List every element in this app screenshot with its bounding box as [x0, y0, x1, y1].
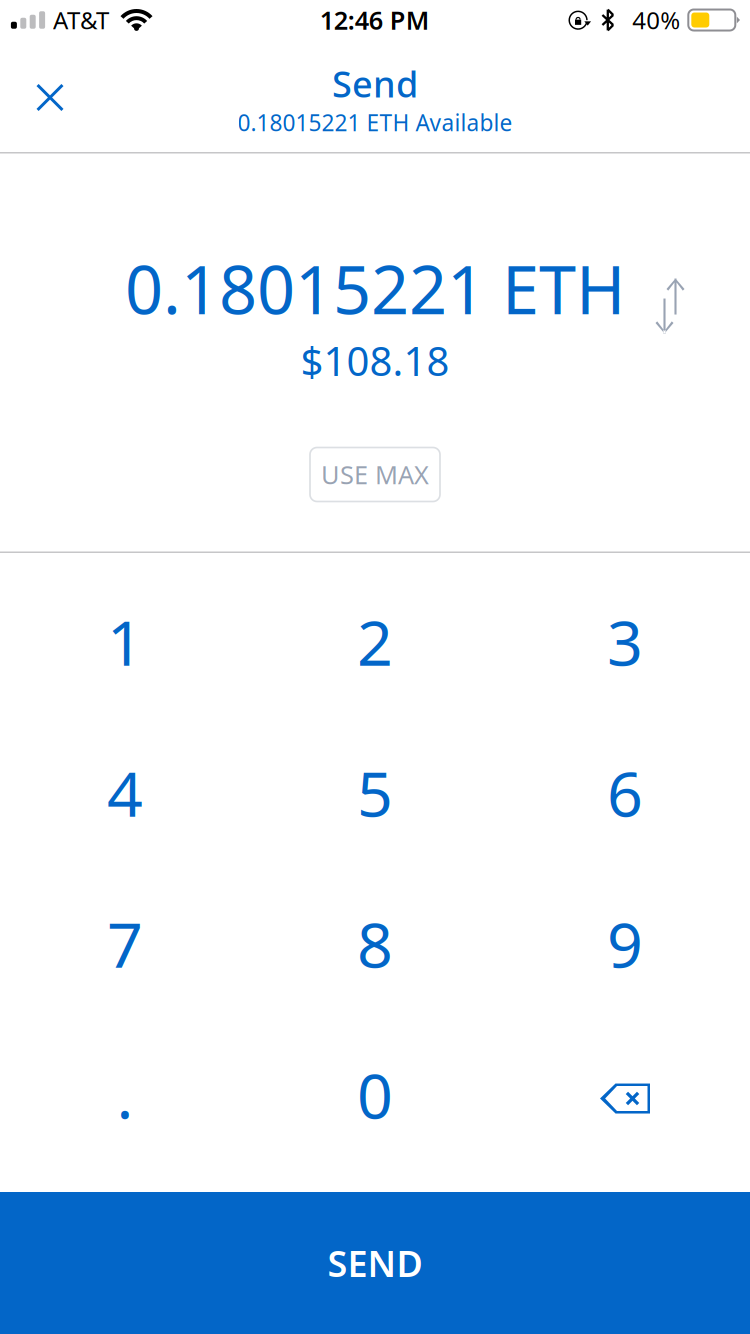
staticText: 2	[357, 600, 393, 683]
staticText: 1	[107, 600, 143, 683]
button[interactable]: 0	[250, 1019, 500, 1170]
staticText: $108.18	[300, 334, 449, 387]
button[interactable]: Switch currency	[657, 277, 685, 334]
staticText: AT&T	[53, 4, 109, 36]
staticText: 8	[357, 902, 393, 985]
staticText: .	[116, 1053, 133, 1136]
staticText: USE MAX	[321, 458, 429, 491]
button[interactable]: 6	[500, 717, 750, 868]
button[interactable]: 2	[250, 566, 500, 717]
staticText: 0	[357, 1053, 393, 1136]
staticText: 40%	[632, 4, 680, 36]
button[interactable]: 4	[0, 717, 250, 868]
button[interactable]: 9	[500, 868, 750, 1019]
button[interactable]: .	[0, 1019, 250, 1170]
button[interactable]: Delete	[500, 1019, 750, 1170]
button[interactable]: Close	[12, 59, 88, 135]
staticText: 7	[107, 902, 143, 985]
button[interactable]: 5	[250, 717, 500, 868]
staticText: 4	[107, 751, 143, 834]
button[interactable]: 8	[250, 868, 500, 1019]
staticText: 12:46 PM	[320, 3, 430, 37]
button[interactable]: 7	[0, 868, 250, 1019]
staticText: SEND	[327, 1239, 422, 1287]
staticText: 3	[607, 600, 643, 683]
staticText: 5	[357, 751, 393, 834]
button[interactable]: 1	[0, 566, 250, 717]
button[interactable]: SEND	[0, 1192, 750, 1334]
staticText: 0.18015221 ETH	[125, 244, 625, 333]
staticText: 0.18015221 ETH Available	[237, 107, 512, 137]
staticText: 9	[607, 902, 643, 985]
staticText: 6	[607, 751, 643, 834]
button[interactable]: USE MAX	[310, 447, 440, 501]
button[interactable]: 3	[500, 566, 750, 717]
staticText: Send	[332, 60, 418, 107]
